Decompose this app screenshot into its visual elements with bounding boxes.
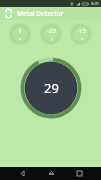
button[interactable]: 1	[9, 23, 31, 45]
button[interactable]: -25	[40, 23, 62, 45]
button[interactable]: Recent apps	[72, 167, 86, 180]
staticText: y	[51, 36, 53, 41]
staticText: -25	[47, 27, 56, 35]
staticText: z	[81, 36, 83, 41]
button[interactable]: Magnetic field strength gauge	[20, 57, 82, 119]
staticText: 3:31	[91, 1, 99, 6]
button[interactable]: Home	[44, 167, 58, 180]
button[interactable]: Menu	[3, 8, 14, 19]
staticText: 1	[18, 27, 22, 35]
staticText: -15	[77, 27, 86, 35]
button[interactable]: Back	[15, 167, 29, 180]
staticText: 29	[44, 79, 59, 97]
staticText: Metal Detector	[17, 9, 64, 18]
staticText: x	[19, 36, 21, 41]
button[interactable]: -15	[70, 23, 92, 45]
